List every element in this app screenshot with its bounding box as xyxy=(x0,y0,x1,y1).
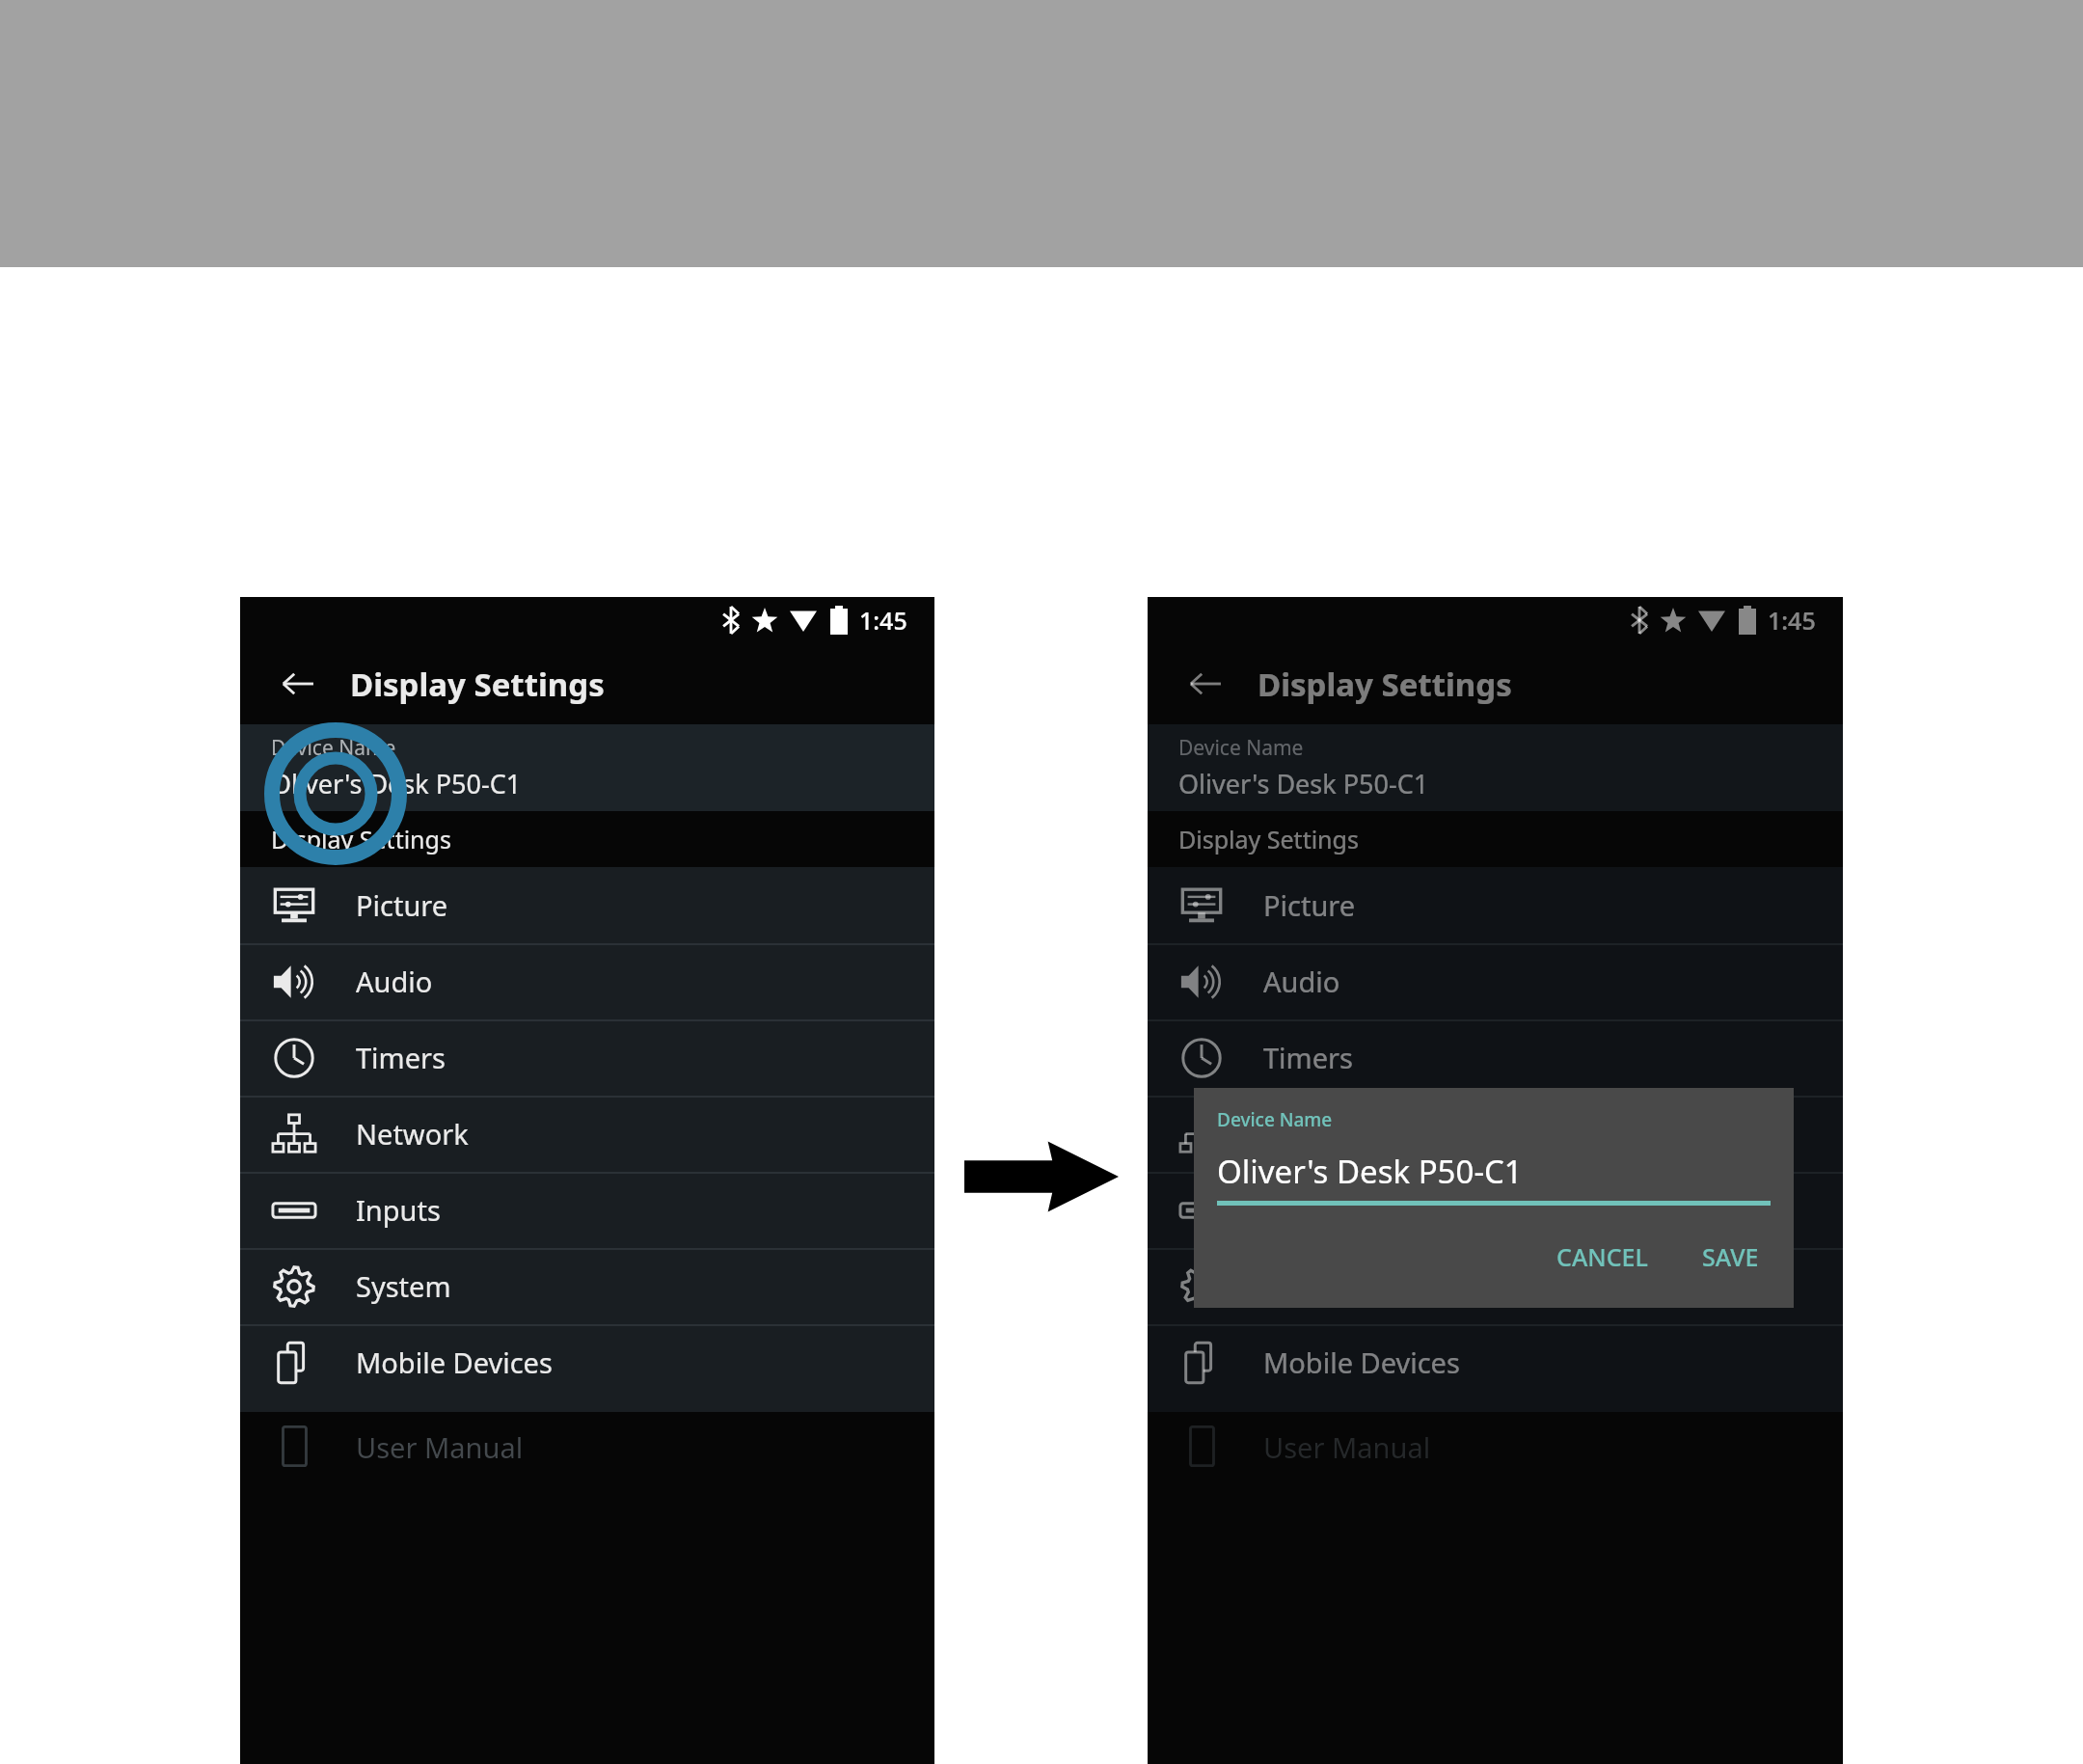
staticText: Oliver's Desk P50-C1 xyxy=(1178,766,1429,801)
button[interactable]: Back xyxy=(269,655,327,713)
button[interactable]: Network xyxy=(1148,1096,1843,1172)
button[interactable]: Picture xyxy=(240,867,934,943)
staticText: Network xyxy=(356,1115,469,1153)
button[interactable]: Audio xyxy=(1148,943,1843,1019)
staticText: Inputs xyxy=(1263,1191,1348,1229)
staticText: Device Name xyxy=(1217,1107,1333,1132)
staticText: Timers xyxy=(1263,1039,1353,1076)
staticText: Display Settings xyxy=(350,663,605,706)
button[interactable]: SAVE xyxy=(1691,1231,1771,1283)
button[interactable]: Network xyxy=(240,1096,934,1172)
button[interactable]: User Manual xyxy=(240,1412,934,1764)
button[interactable]: Device Name xyxy=(1148,724,1843,811)
staticText: Timers xyxy=(356,1039,446,1076)
staticText: 1:45 xyxy=(1768,604,1816,637)
staticText: System xyxy=(356,1267,451,1305)
staticText: Network xyxy=(1263,1115,1376,1153)
staticText: Device Name xyxy=(271,734,396,762)
button[interactable]: CANCEL xyxy=(1545,1231,1660,1283)
staticText: Display Settings xyxy=(1258,663,1512,706)
staticText: User Manual xyxy=(356,1428,524,1466)
staticText: SAVE xyxy=(1702,1240,1759,1273)
button[interactable]: Back xyxy=(1177,655,1234,713)
staticText: Audio xyxy=(1263,963,1340,1000)
staticText: Mobile Devices xyxy=(356,1343,553,1381)
staticText: Audio xyxy=(356,963,433,1000)
button[interactable]: Mobile Devices xyxy=(240,1324,934,1400)
button[interactable]: Picture xyxy=(1148,867,1843,943)
staticText: Oliver's Desk P50-C1 xyxy=(271,766,522,801)
staticText: Picture xyxy=(356,886,448,924)
staticText: User Manual xyxy=(1263,1428,1431,1466)
staticText: Device Name xyxy=(1178,734,1304,762)
staticText: Oliver's Desk P50-C1 xyxy=(1217,1150,1523,1193)
button[interactable]: Timers xyxy=(240,1019,934,1096)
button[interactable]: System xyxy=(240,1248,934,1324)
staticText: Display Settings xyxy=(1178,823,1359,855)
button[interactable]: Audio xyxy=(240,943,934,1019)
staticText: Display Settings xyxy=(271,823,451,855)
staticText: Inputs xyxy=(356,1191,441,1229)
staticText: Picture xyxy=(1263,886,1356,924)
staticText: CANCEL xyxy=(1556,1240,1648,1273)
button[interactable]: Inputs xyxy=(1148,1172,1843,1248)
button[interactable]: Device Name xyxy=(240,724,934,811)
button[interactable]: Timers xyxy=(1148,1019,1843,1096)
staticText: Mobile Devices xyxy=(1263,1343,1460,1381)
button[interactable]: Inputs xyxy=(240,1172,934,1248)
button[interactable]: Mobile Devices xyxy=(1148,1324,1843,1400)
button[interactable]: System xyxy=(1148,1248,1843,1324)
staticText: 1:45 xyxy=(859,604,907,637)
